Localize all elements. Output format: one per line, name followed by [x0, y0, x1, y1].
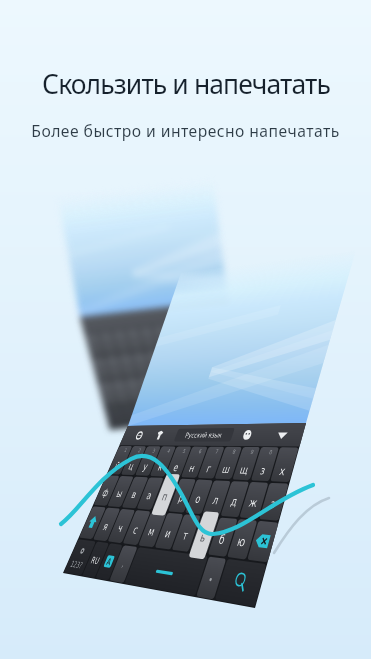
staticText: Более быстро и интересно напечатать: [31, 120, 340, 141]
staticText: Скользить и напечатать: [42, 66, 330, 102]
